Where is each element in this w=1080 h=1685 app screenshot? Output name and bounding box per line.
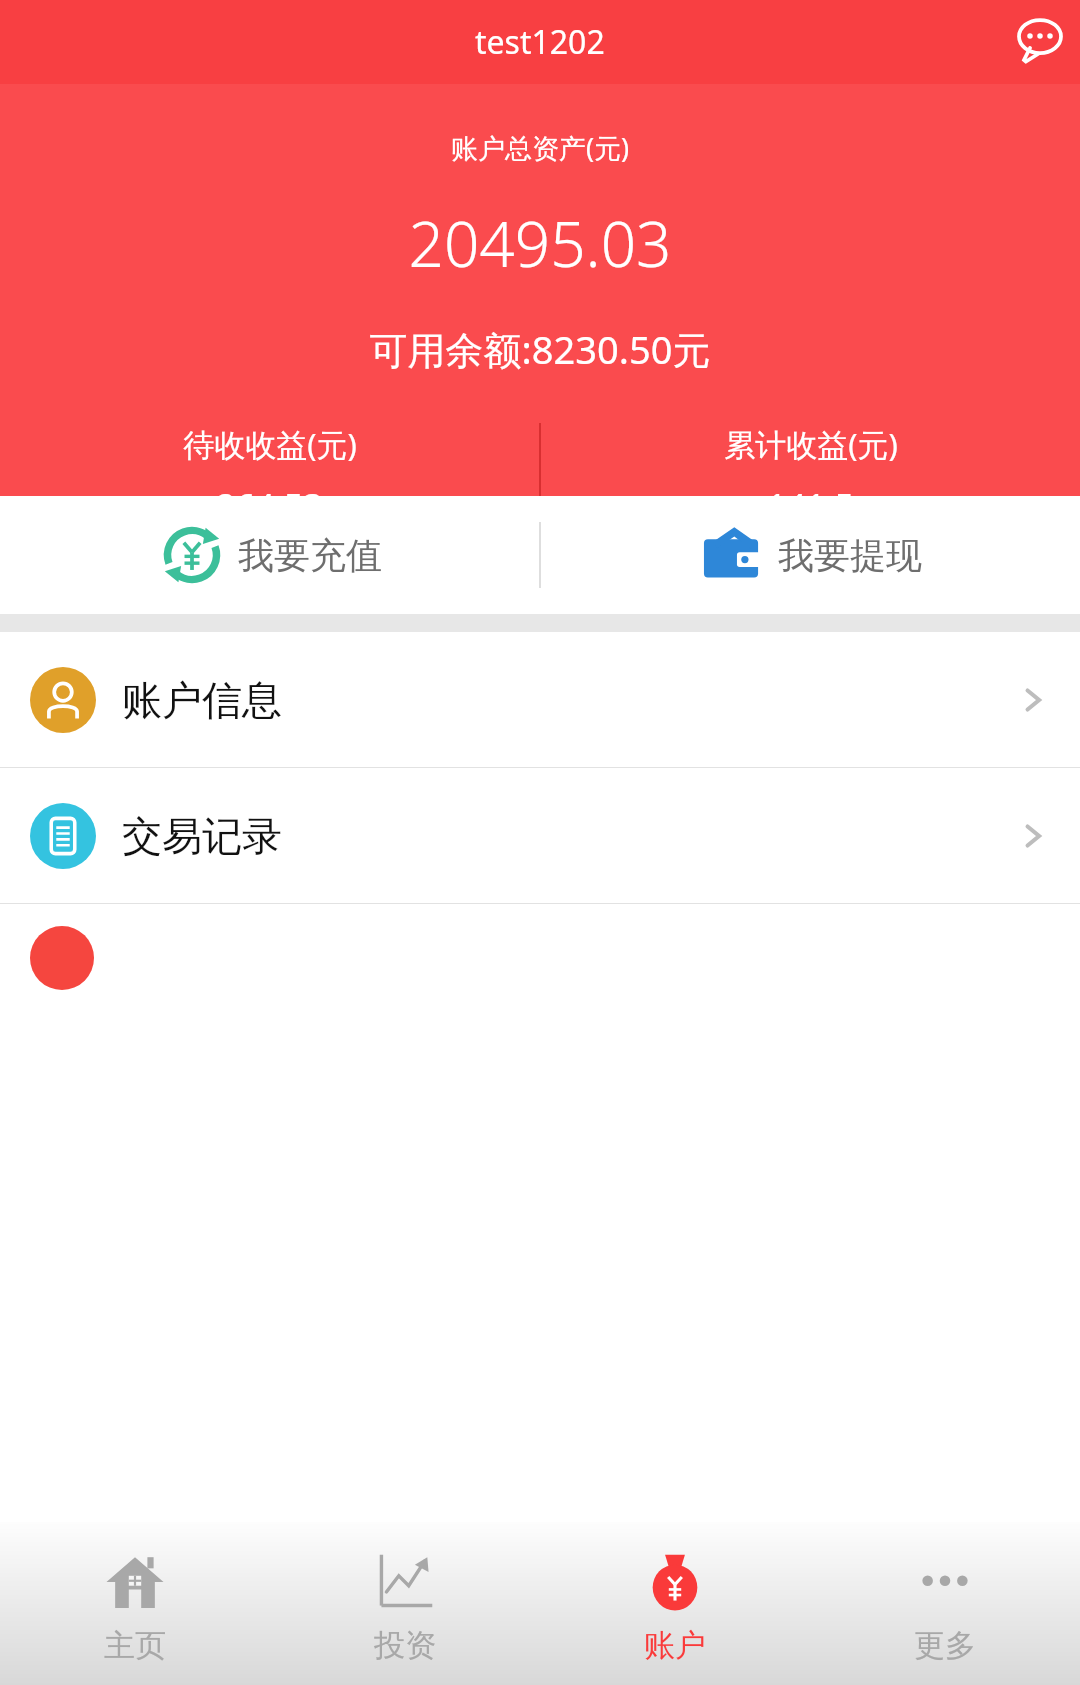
staticText: 账户总资产(元) [0,129,1080,166]
button[interactable]: 账户信息 [0,632,1080,767]
button[interactable]: 待收收益(元) [0,423,539,496]
button[interactable]: 更多 [810,1522,1080,1685]
staticText: 交易记录 [122,811,282,861]
staticText: 待收收益(元) [183,423,357,465]
button[interactable]: 交易记录 [0,768,1080,903]
button[interactable]: 投资 [270,1522,540,1685]
staticText: 我要提现 [778,533,922,578]
staticText: 累计收益(元) [724,423,898,465]
staticText: 主页 [104,1626,166,1665]
staticText: 141.5 [767,483,854,496]
staticText: 账户信息 [122,675,282,725]
staticText: 20495.03 [0,201,1080,285]
staticText: 我要充值 [238,533,382,578]
staticText: 账户 [644,1626,706,1665]
button[interactable]: Messages [1014,16,1066,68]
staticText: 可用余额:8230.50元 [0,323,1080,375]
button[interactable]: 我要提现 [541,496,1080,614]
staticText: test1202 [475,20,605,64]
button[interactable]: 累计收益(元) [541,423,1080,496]
button[interactable] [0,904,1080,1522]
button[interactable]: 主页 [0,1522,270,1685]
button[interactable]: 账户 [540,1522,810,1685]
button[interactable]: 我要充值 [0,496,539,614]
staticText: 投资 [374,1626,436,1665]
staticText: 更多 [914,1626,976,1665]
staticText: 264.53 [216,483,323,496]
